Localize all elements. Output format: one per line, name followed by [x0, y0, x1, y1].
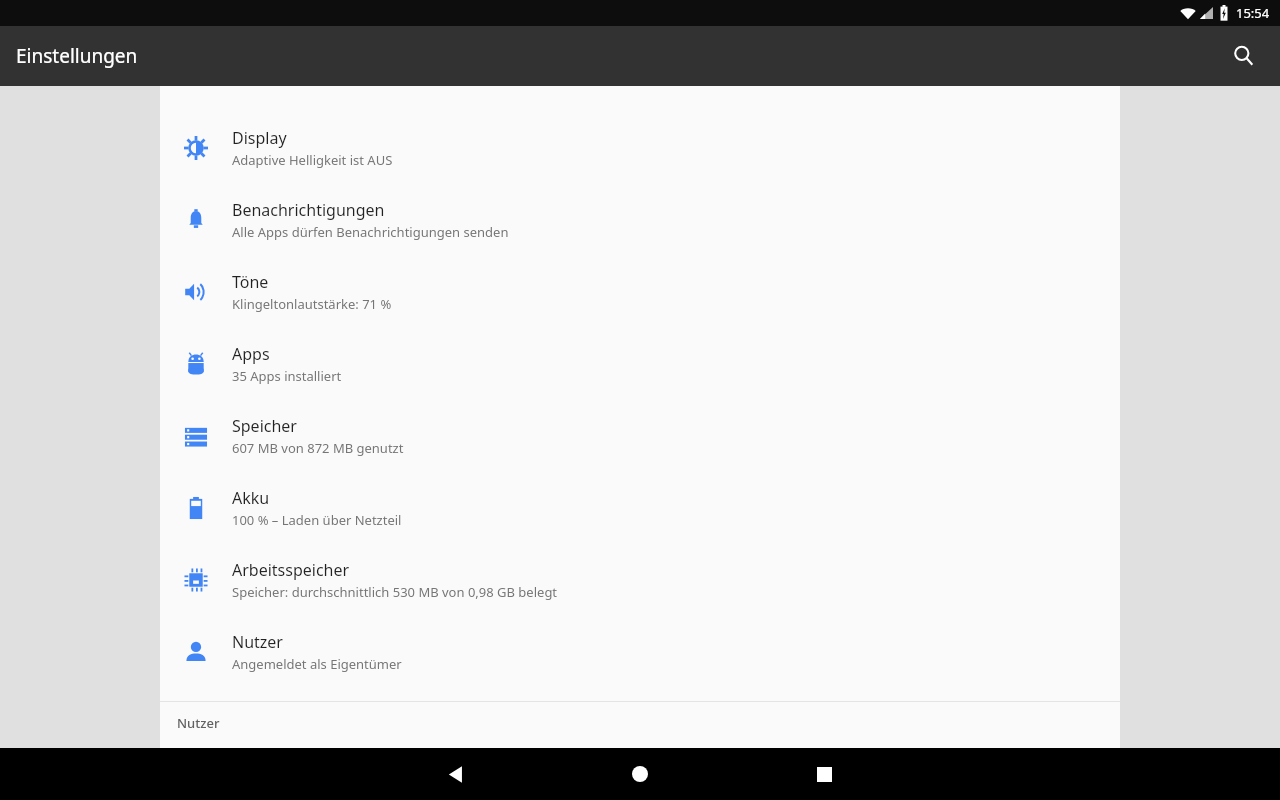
button[interactable]: Benachrichtigungen: [160, 184, 1120, 256]
staticText: Alle Apps dürfen Benachrichtigungen send…: [232, 223, 509, 241]
staticText: Speicher: [232, 415, 297, 437]
staticText: Adaptive Helligkeit ist AUS: [232, 151, 393, 169]
button[interactable]: Display: [160, 112, 1120, 184]
button[interactable]: Apps: [160, 328, 1120, 400]
staticText: Nutzer: [177, 714, 220, 732]
staticText: 35 Apps installiert: [232, 367, 342, 385]
button[interactable]: Nutzer: [160, 616, 1120, 688]
button[interactable]: Arbeitsspeicher: [160, 544, 1120, 616]
staticText: Angemeldet als Eigentümer: [232, 655, 402, 673]
staticText: Speicher: durchschnittlich 530 MB von 0,…: [232, 583, 558, 601]
staticText: Töne: [232, 271, 269, 293]
button[interactable]: Akku: [160, 472, 1120, 544]
button[interactable]: Zurück: [430, 748, 482, 800]
button[interactable]: Töne: [160, 256, 1120, 328]
staticText: Benachrichtigungen: [232, 199, 385, 221]
staticText: 15:54: [1236, 4, 1270, 22]
staticText: Klingeltonlautstärke: 71 %: [232, 295, 392, 313]
button[interactable]: Startbildschirm: [614, 748, 666, 800]
staticText: Arbeitsspeicher: [232, 559, 350, 581]
staticText: Nutzer: [232, 631, 283, 653]
staticText: Display: [232, 127, 287, 149]
staticText: Einstellungen: [16, 43, 138, 69]
staticText: Apps: [232, 343, 270, 365]
staticText: Akku: [232, 487, 270, 509]
button[interactable]: Suchen: [1220, 32, 1268, 80]
staticText: 100 % – Laden über Netzteil: [232, 511, 402, 529]
staticText: 607 MB von 872 MB genutzt: [232, 439, 404, 457]
button[interactable]: Speicher: [160, 400, 1120, 472]
button[interactable]: Übersicht: [798, 748, 850, 800]
